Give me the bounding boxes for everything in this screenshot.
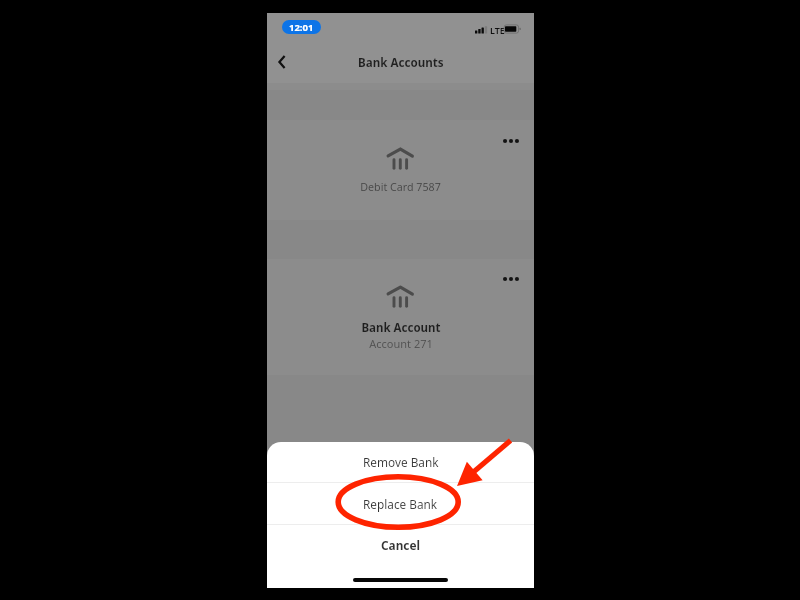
staticText: Bank Accounts <box>358 55 444 71</box>
button[interactable]: Back <box>268 48 296 76</box>
staticText: 12:01 <box>289 21 314 34</box>
staticText: Debit Card 7587 <box>360 180 441 195</box>
staticText: Remove Bank <box>363 454 439 470</box>
staticText: Cancel <box>381 537 420 553</box>
staticText: Replace Bank <box>363 496 438 512</box>
button[interactable]: More options <box>499 130 523 152</box>
button[interactable]: Cancel <box>267 525 534 565</box>
staticText: Account 271 <box>369 336 433 351</box>
button[interactable]: More options <box>499 268 523 290</box>
button[interactable]: More options <box>267 120 534 220</box>
staticText: Bank Account <box>361 320 441 336</box>
button[interactable]: More options <box>267 259 534 375</box>
staticText: LTE <box>490 24 505 36</box>
button[interactable]: Remove Bank <box>267 442 534 482</box>
button[interactable]: Replace Bank <box>267 483 534 524</box>
